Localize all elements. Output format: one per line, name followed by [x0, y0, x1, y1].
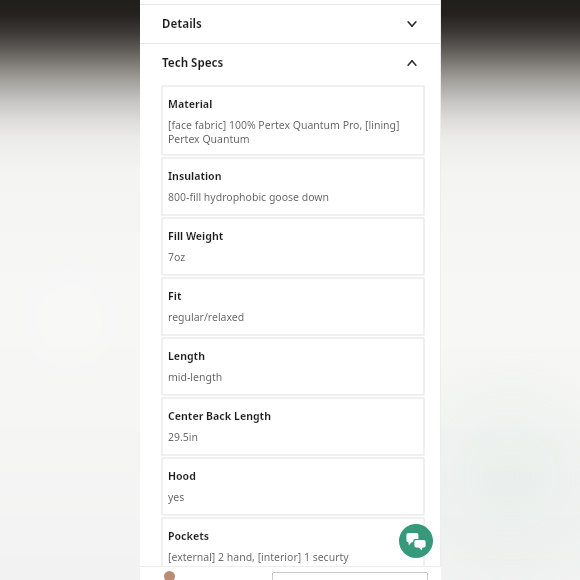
staticText: mid-length: [168, 370, 223, 384]
button[interactable]: Fit: [162, 278, 424, 335]
staticText: [face fabric] 100% Pertex Quantum Pro, […: [168, 118, 416, 146]
staticText: Fit: [168, 289, 182, 303]
button[interactable]: Material: [162, 86, 424, 155]
staticText: Details: [162, 16, 202, 32]
button[interactable]: Details: [140, 5, 441, 43]
staticText: Fill Weight: [168, 229, 224, 243]
staticText: Insulation: [168, 169, 222, 183]
staticText: [external] 2 hand, [interior] 1 securty: [168, 550, 349, 564]
staticText: 7oz: [168, 250, 186, 264]
staticText: Hood: [168, 469, 196, 483]
button[interactable]: [272, 572, 428, 580]
button[interactable]: Open chat: [399, 524, 433, 558]
staticText: Length: [168, 349, 205, 363]
button[interactable]: Tech Specs: [140, 44, 441, 82]
button[interactable]: Length: [162, 338, 424, 395]
staticText: Material: [168, 97, 213, 111]
staticText: Tech Specs: [162, 55, 224, 71]
button[interactable]: Insulation: [162, 158, 424, 215]
staticText: Pockets: [168, 529, 210, 543]
button[interactable]: Fill Weight: [162, 218, 424, 275]
button[interactable]: Pockets: [162, 518, 424, 575]
staticText: regular/relaxed: [168, 310, 245, 324]
button[interactable]: Center Back Length: [162, 398, 424, 455]
staticText: yes: [168, 490, 185, 504]
staticText: 800-fill hydrophobic goose down: [168, 190, 330, 204]
staticText: 29.5in: [168, 430, 199, 444]
staticText: Center Back Length: [168, 409, 271, 423]
button[interactable]: Hood: [162, 458, 424, 515]
